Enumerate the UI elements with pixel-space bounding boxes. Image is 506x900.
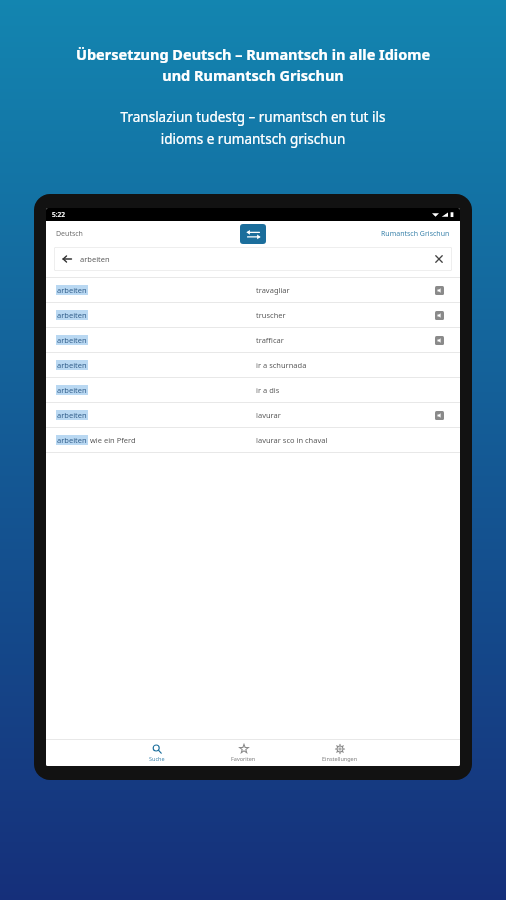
staticText: 5:22	[52, 210, 65, 219]
button[interactable]: Zurück	[60, 252, 74, 266]
staticText: Suche	[149, 755, 165, 762]
button[interactable]: Suche	[141, 742, 173, 764]
button[interactable]: arbeiten	[46, 403, 460, 428]
button[interactable]: Zurück	[54, 247, 452, 271]
button[interactable]: Einstellungen	[314, 742, 366, 764]
button[interactable]: Rumantsch Grischun	[373, 225, 460, 243]
staticText: arbeiten	[57, 410, 87, 420]
button[interactable]: arbeiten	[46, 378, 460, 403]
staticText: lavurar sco in chaval	[256, 435, 328, 445]
button[interactable]: arbeiten	[46, 328, 460, 353]
staticText: wie ein Pferd	[88, 435, 136, 445]
staticText: travagliar	[256, 285, 290, 295]
staticText: Übersetzung Deutsch – Rumantsch in alle …	[26, 44, 480, 86]
staticText: arbeiten	[57, 285, 87, 295]
staticText: lavurar	[256, 410, 281, 420]
button[interactable]: Anhören	[435, 286, 444, 295]
button[interactable]: arbeiten	[46, 278, 460, 303]
button[interactable]: Deutsch	[46, 225, 91, 243]
staticText: arbeiten	[57, 310, 87, 320]
button[interactable]: arbeiten	[46, 303, 460, 328]
button[interactable]: arbeiten	[46, 353, 460, 378]
staticText: Einstellungen	[322, 755, 358, 762]
button[interactable]: arbeiten	[46, 428, 460, 453]
staticText: trafficar	[256, 335, 284, 345]
staticText: arbeiten	[57, 360, 87, 370]
staticText: arbeiten	[57, 435, 87, 445]
button[interactable]: Anhören	[435, 411, 444, 420]
button[interactable]: Favoriten	[223, 742, 264, 764]
staticText: Favoriten	[231, 755, 256, 762]
staticText: ir a dis	[256, 385, 280, 395]
staticText: arbeiten	[57, 335, 87, 345]
button[interactable]: Sprachen tauschen	[240, 224, 266, 244]
staticText: ir a schurnada	[256, 360, 307, 370]
staticText: arbeiten	[80, 254, 110, 264]
button[interactable]: Anhören	[435, 311, 444, 320]
staticText: Translaziun tudestg – rumantsch en tut i…	[26, 108, 480, 148]
button[interactable]: Anhören	[435, 336, 444, 345]
staticText: truscher	[256, 310, 286, 320]
button[interactable]: Löschen	[432, 252, 446, 266]
staticText: arbeiten	[57, 385, 87, 395]
